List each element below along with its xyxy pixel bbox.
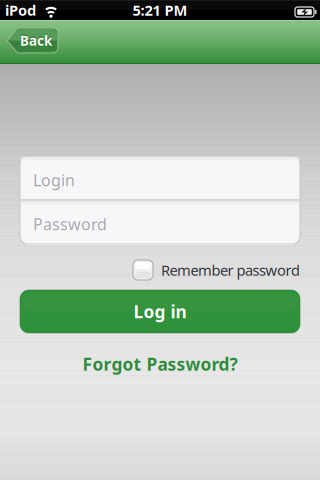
staticText: Log in [133, 300, 186, 323]
staticText: Remember password [161, 260, 300, 280]
button[interactable]: Forgot Password? [82, 352, 237, 375]
button[interactable]: Back [6, 28, 58, 53]
staticText: Back [20, 32, 52, 49]
staticText: iPod [5, 0, 36, 20]
button[interactable]: Password [21, 200, 299, 243]
button[interactable]: Login [21, 156, 299, 199]
button[interactable]: Remember password [133, 260, 300, 280]
staticText: Password [33, 213, 107, 235]
button[interactable]: Log in [20, 290, 300, 333]
staticText: 5:21 PM [132, 0, 187, 20]
staticText: Login [33, 169, 75, 191]
staticText: Forgot Password? [82, 352, 237, 375]
